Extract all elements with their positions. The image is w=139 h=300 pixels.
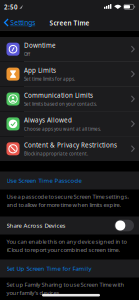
staticText: Use Screen Time Passcode (6, 176, 81, 185)
button[interactable]: App Limits (0, 62, 139, 86)
staticText: Block inappropriate content. (24, 151, 88, 157)
staticText: your family's devices. (6, 289, 61, 297)
staticText: Screen Time (49, 19, 89, 27)
button[interactable]: Always Allowed (0, 112, 139, 136)
staticText: App Limits (24, 66, 56, 74)
button[interactable]: Settings (1, 18, 35, 27)
staticText: Downtime (24, 41, 56, 50)
staticText: Set time limits for apps. (24, 76, 75, 82)
button[interactable]: Communication Limits (0, 87, 139, 111)
staticText: Always Allowed (24, 116, 72, 124)
staticText: Set Up Screen Time for Family (6, 264, 91, 273)
staticText: Choose apps you want at all times. (24, 126, 101, 132)
staticText: 2:50 (4, 3, 18, 11)
staticText: Set up Family Sharing to use Screen Time… (6, 281, 124, 288)
staticText: Content & Privacy Restrictions (24, 141, 117, 149)
staticText: Set limits based on your contacts. (24, 101, 97, 107)
staticText: Share Across Devices (6, 221, 65, 230)
button[interactable]: Set Up Screen Time for Family (0, 259, 139, 277)
button[interactable]: Use Screen Time Passcode (0, 171, 139, 189)
staticText: Settings (10, 18, 35, 27)
button[interactable]: Share Across Devices (0, 216, 139, 234)
staticText: Communication Limits (24, 91, 93, 99)
staticText: Off (24, 51, 30, 57)
staticText: iCloud to report your combined screen ti… (6, 246, 120, 254)
staticText: Use a passcode to secure Screen Time set… (6, 193, 129, 200)
button[interactable]: Downtime (0, 37, 139, 61)
staticText: You can enable this on any device signed… (6, 238, 126, 245)
staticText: and to allow for more time when limits e… (6, 201, 121, 209)
button[interactable]: Content & Privacy Restrictions (0, 137, 139, 161)
